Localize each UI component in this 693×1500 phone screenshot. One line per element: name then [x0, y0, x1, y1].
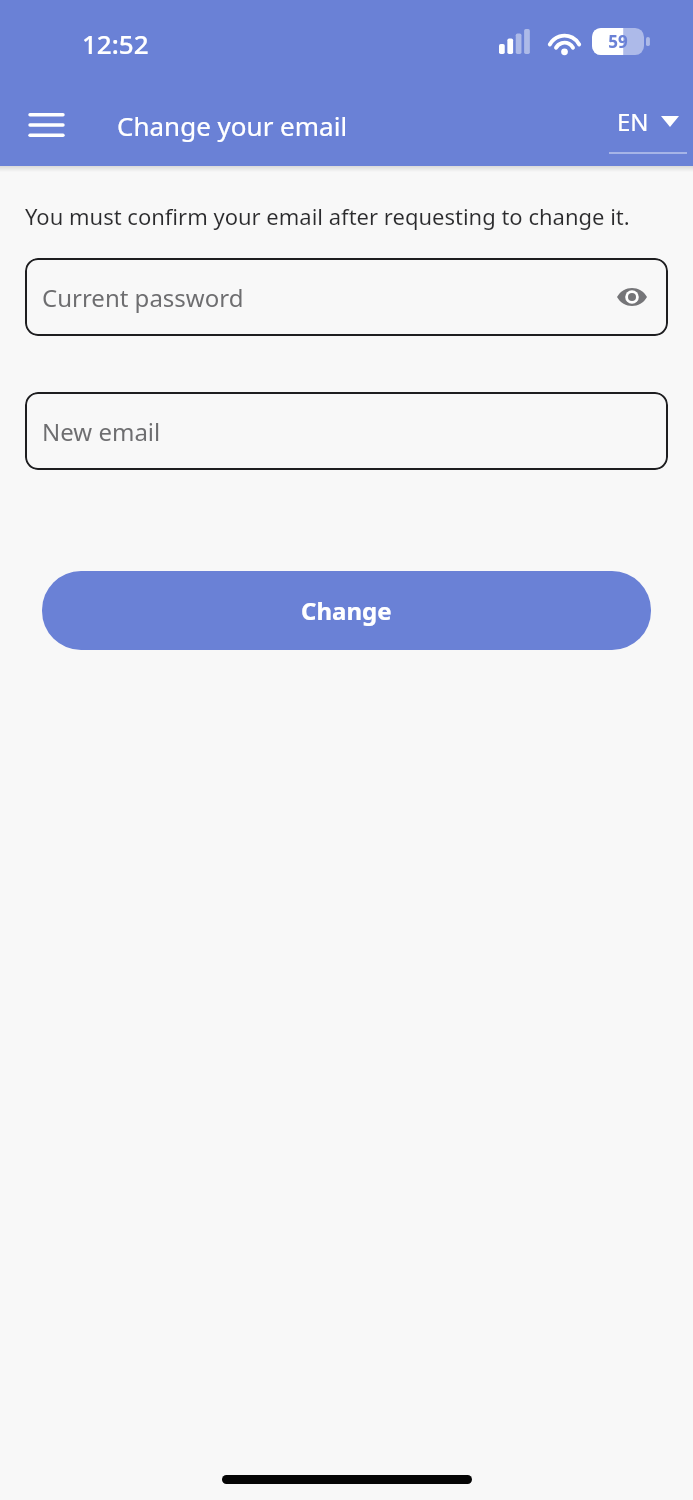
- staticText: Change your email: [117, 108, 348, 143]
- button[interactable]: Open navigation menu: [14, 93, 78, 157]
- button[interactable]: New email: [25, 392, 668, 470]
- staticText: Change: [301, 594, 392, 627]
- staticText: New email: [42, 415, 161, 448]
- staticText: 59: [608, 30, 628, 53]
- button[interactable]: Show password: [608, 273, 656, 321]
- button[interactable]: EN: [603, 105, 693, 154]
- staticText: You must confirm your email after reques…: [25, 201, 630, 231]
- staticText: EN: [617, 105, 649, 138]
- button[interactable]: Change: [42, 571, 651, 650]
- staticText: 12:52: [82, 26, 149, 61]
- button[interactable]: Current password: [25, 258, 668, 336]
- staticText: Current password: [42, 281, 244, 314]
